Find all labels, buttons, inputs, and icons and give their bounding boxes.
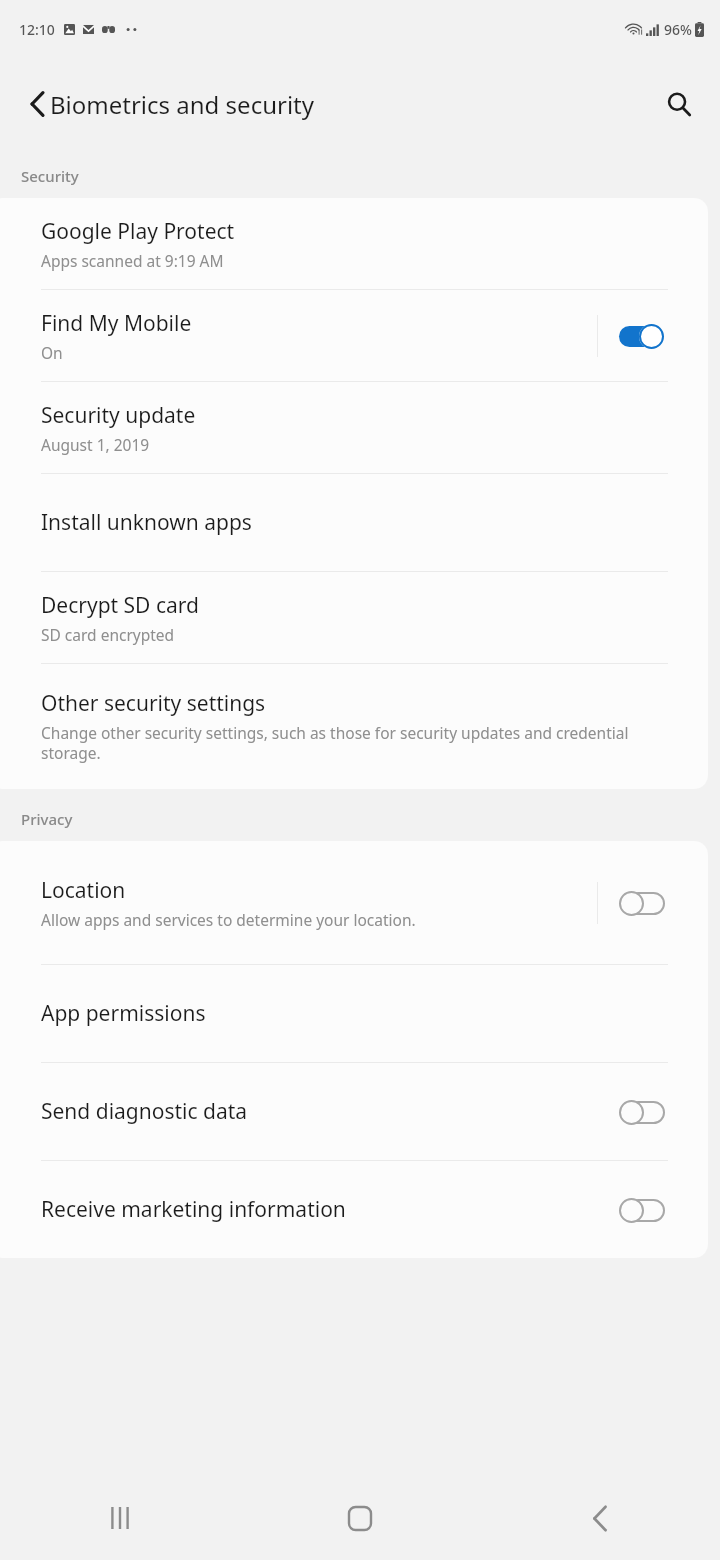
staticText: Security — [21, 166, 79, 186]
staticText: SD card encrypted — [41, 624, 175, 645]
button[interactable]: Find My Mobile — [606, 307, 676, 365]
button[interactable]: App permissions — [0, 965, 708, 1062]
button[interactable]: Send diagnostic data — [606, 1083, 676, 1141]
staticText: August 1, 2019 — [41, 434, 150, 455]
button[interactable]: Send diagnostic data — [0, 1063, 708, 1160]
button[interactable]: Security update — [0, 382, 708, 473]
button[interactable]: Install unknown apps — [0, 474, 708, 571]
staticText: Location — [41, 876, 126, 905]
staticText: 96% — [664, 20, 692, 39]
button[interactable]: Decrypt SD card — [0, 572, 708, 663]
staticText: Find My Mobile — [41, 309, 192, 338]
staticText: Install unknown apps — [41, 508, 252, 537]
button[interactable]: Back — [480, 1476, 720, 1560]
staticText: 12:10 — [19, 20, 55, 39]
button[interactable]: Search — [650, 75, 708, 133]
staticText: Biometrics and security — [50, 88, 314, 121]
staticText: Allow apps and services to determine you… — [41, 909, 416, 930]
button[interactable]: Other security settings — [0, 664, 708, 789]
staticText: Decrypt SD card — [41, 591, 199, 620]
staticText: Change other security settings, such as … — [41, 722, 672, 764]
button[interactable]: Home — [240, 1476, 480, 1560]
staticText: Send diagnostic data — [41, 1097, 248, 1126]
staticText: Other security settings — [41, 689, 266, 718]
staticText: On — [41, 342, 63, 363]
staticText: Apps scanned at 9:19 AM — [41, 250, 224, 271]
staticText: App permissions — [41, 999, 206, 1028]
button[interactable]: Location — [606, 874, 676, 932]
button[interactable]: Location — [0, 841, 708, 964]
button[interactable]: Google Play Protect — [0, 198, 708, 289]
button[interactable]: Recent apps — [0, 1476, 240, 1560]
staticText: Receive marketing information — [41, 1195, 346, 1224]
staticText: Google Play Protect — [41, 217, 235, 246]
button[interactable]: Receive marketing information — [0, 1161, 708, 1258]
button[interactable]: Find My Mobile — [0, 290, 708, 381]
button[interactable]: Receive marketing information — [606, 1181, 676, 1239]
button[interactable]: Navigate up — [8, 75, 66, 133]
staticText: Privacy — [21, 809, 73, 829]
staticText: Security update — [41, 401, 196, 430]
